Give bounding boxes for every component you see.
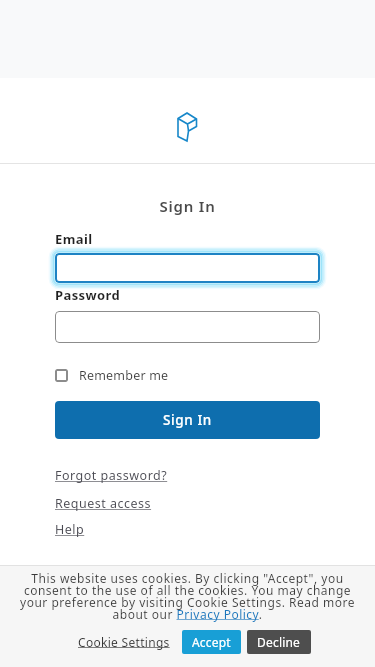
button[interactable] [55,311,320,343]
button[interactable]: Sign In [55,401,320,439]
staticText: Email [55,230,93,248]
staticText: Sign In [163,411,212,429]
button[interactable] [55,253,320,283]
staticText: Accept [192,634,231,650]
button[interactable]: Remember me [55,367,169,384]
button[interactable]: Help [55,521,85,538]
staticText: Password [55,286,121,304]
button[interactable]: Forgot password? [55,467,168,484]
staticText: Sign In [0,196,375,216]
button[interactable]: Cookie Settings [78,634,170,650]
staticText: Decline [257,634,301,650]
staticText: Remember me [79,367,169,384]
staticText: This website uses cookies. By clicking "… [20,570,355,622]
button[interactable]: Decline [247,630,311,654]
button[interactable]: Request access [55,495,152,512]
button[interactable]: Accept [182,630,241,654]
